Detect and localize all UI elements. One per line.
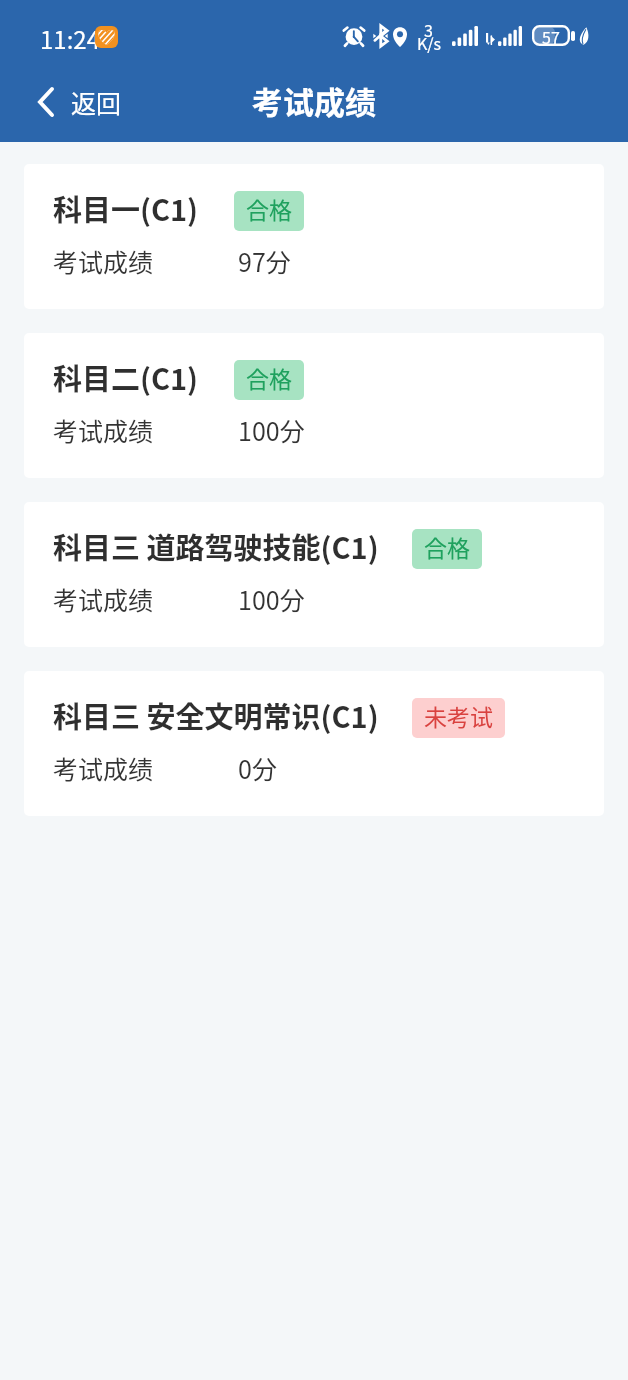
staticText: 考试成绩 [252,78,376,123]
staticText: 97分 [238,243,291,279]
staticText: 考试成绩 [53,412,154,448]
button[interactable]: 科目一(C1) [24,164,604,309]
staticText: 科目三 安全文明常识(C1) [53,694,379,736]
staticText: 3 [424,18,433,41]
staticText: 合格 [246,361,292,394]
staticText: 考试成绩 [53,243,154,279]
staticText: 0分 [238,750,277,786]
staticText: 科目三 道路驾驶技能(C1) [53,525,379,567]
button[interactable]: 科目三 安全文明常识(C1) [24,671,604,816]
staticText: 返回 [71,84,122,120]
staticText: 科目二(C1) [53,356,199,398]
staticText: 未考试 [424,699,493,732]
staticText: 57 [542,25,560,46]
staticText: K/s [417,31,442,54]
button[interactable]: 科目二(C1) [24,333,604,478]
staticText: 100分 [238,581,305,617]
staticText: 合格 [246,192,292,225]
button[interactable]: 科目三 道路驾驶技能(C1) [24,502,604,647]
staticText: 11:24 [40,21,100,56]
staticText: 合格 [424,530,470,563]
staticText: 考试成绩 [53,750,154,786]
staticText: 科目一(C1) [53,187,199,229]
staticText: 100分 [238,412,305,448]
staticText: 考试成绩 [53,581,154,617]
button[interactable]: 返回 [0,72,146,132]
